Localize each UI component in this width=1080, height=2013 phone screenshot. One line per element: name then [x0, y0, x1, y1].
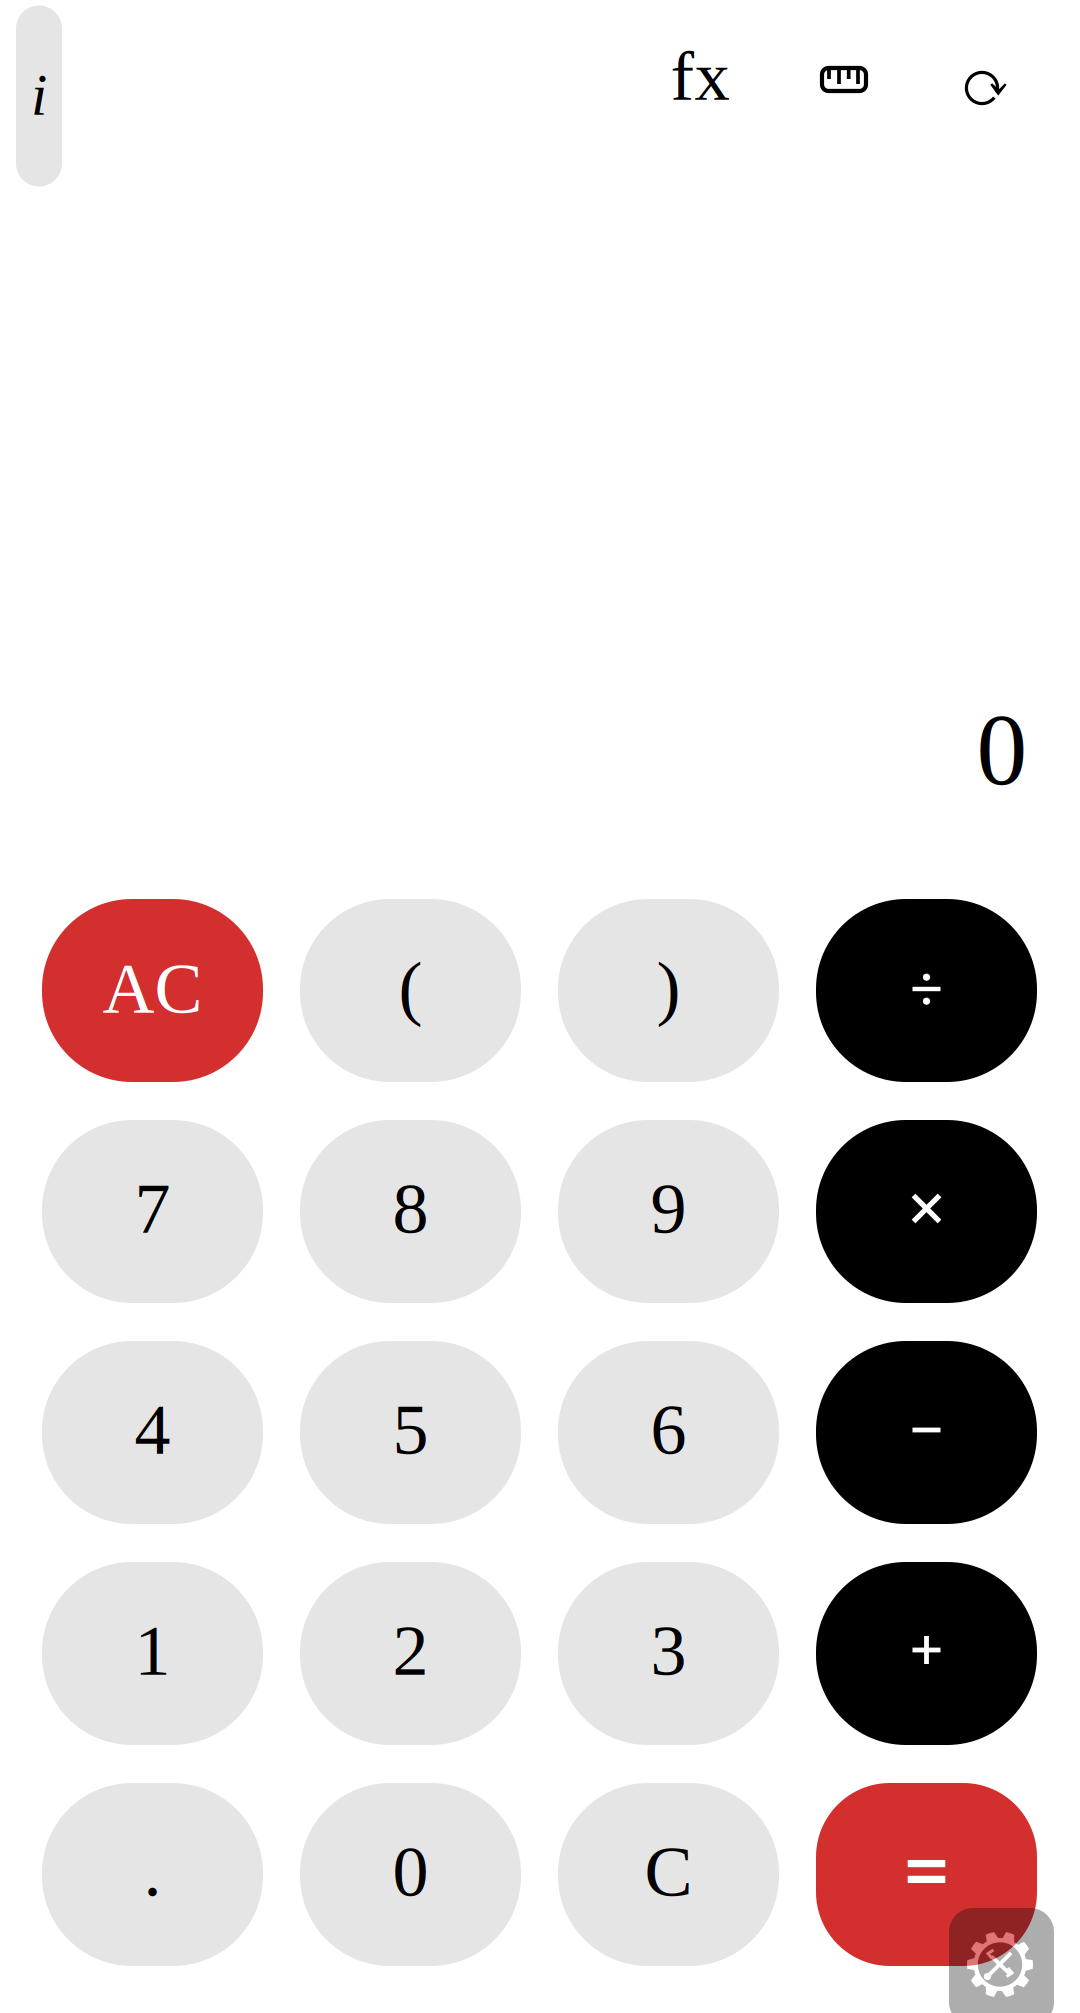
button[interactable]: 2: [300, 1562, 521, 1745]
staticText: 6: [650, 1390, 686, 1469]
button[interactable]: fx: [652, 24, 748, 128]
button[interactable]: 3: [558, 1562, 779, 1745]
staticText: 4: [134, 1390, 170, 1469]
button[interactable]: Info: [16, 5, 62, 186]
staticText: AC: [102, 949, 202, 1028]
staticText: 1: [134, 1611, 170, 1690]
staticText: 0: [392, 1832, 428, 1911]
staticText: C: [644, 1832, 692, 1911]
button[interactable]: Reset: [934, 36, 1030, 140]
staticText: .: [143, 1832, 161, 1911]
staticText: 5: [392, 1390, 428, 1469]
button[interactable]: Multiply: [816, 1120, 1037, 1303]
staticText: 3: [650, 1611, 686, 1690]
button[interactable]: .: [42, 1783, 263, 1966]
staticText: (: [398, 948, 422, 1027]
button[interactable]: (: [300, 899, 521, 1082]
button[interactable]: ): [558, 899, 779, 1082]
button[interactable]: Divide: [816, 899, 1037, 1082]
button[interactable]: C: [558, 1783, 779, 1966]
staticText: 2: [392, 1611, 428, 1690]
staticText: fx: [670, 37, 729, 115]
button[interactable]: Unit converter: [796, 27, 892, 131]
button[interactable]: 1: [42, 1562, 263, 1745]
button[interactable]: Add: [816, 1562, 1037, 1745]
button[interactable]: 5: [300, 1341, 521, 1524]
staticText: 8: [392, 1169, 428, 1248]
staticText: 7: [134, 1169, 170, 1248]
staticText: 0: [976, 694, 1027, 806]
staticText: ): [656, 948, 680, 1027]
button[interactable]: AC: [42, 899, 263, 1082]
staticText: i: [31, 62, 47, 127]
button[interactable]: 0: [300, 1783, 521, 1966]
button[interactable]: 9: [558, 1120, 779, 1303]
staticText: 9: [650, 1169, 686, 1248]
button[interactable]: 6: [558, 1341, 779, 1524]
button[interactable]: 8: [300, 1120, 521, 1303]
button[interactable]: 7: [42, 1120, 263, 1303]
button[interactable]: 4: [42, 1341, 263, 1524]
button[interactable]: Subtract: [816, 1341, 1037, 1524]
button[interactable]: Equals: [816, 1783, 1037, 1966]
